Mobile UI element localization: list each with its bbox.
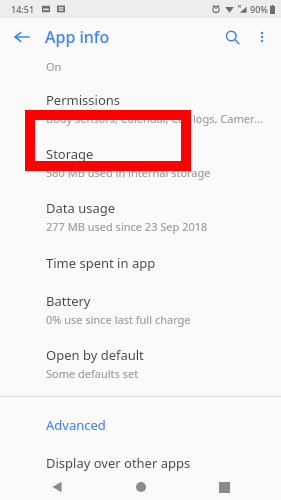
staticText: Display over other apps (46, 454, 191, 472)
button[interactable]: Recent apps (211, 474, 237, 500)
button[interactable]: Time spent in app (0, 234, 281, 272)
staticText: 14:51 (11, 3, 35, 15)
staticText: Time spent in app (46, 254, 156, 272)
button[interactable]: Advanced (0, 397, 281, 434)
button[interactable]: Storage (0, 126, 281, 180)
staticText: On (46, 59, 62, 74)
button[interactable]: More options (247, 22, 277, 52)
button[interactable]: Display over other apps (0, 434, 281, 473)
staticText: Battery (46, 292, 91, 310)
staticText: App info (45, 26, 110, 48)
staticText: Storage (46, 145, 94, 163)
staticText: Some defaults set (46, 366, 139, 381)
staticText: 277 MB used since 23 Sep 2018 (46, 219, 208, 234)
staticText: 0% use since last full charge (46, 312, 191, 327)
staticText: Open by default (46, 346, 144, 364)
button[interactable]: Search (217, 22, 247, 52)
button[interactable]: Home (128, 474, 154, 500)
button[interactable]: Permissions (0, 74, 281, 126)
staticText: 580 MB used in internal storage (46, 165, 211, 180)
button[interactable]: Battery (0, 272, 281, 327)
staticText: 90% (250, 3, 268, 15)
staticText: Data usage (46, 199, 116, 217)
staticText: Body sensors, Calendar, Call logs, Camer… (46, 111, 267, 126)
button[interactable]: Data usage (0, 180, 281, 234)
button[interactable]: Back (8, 23, 36, 51)
button[interactable]: Back (44, 474, 70, 500)
button[interactable]: On (0, 56, 281, 74)
staticText: Permissions (46, 91, 121, 109)
staticText: Advanced (46, 416, 106, 434)
button[interactable]: Open by default (0, 327, 281, 381)
